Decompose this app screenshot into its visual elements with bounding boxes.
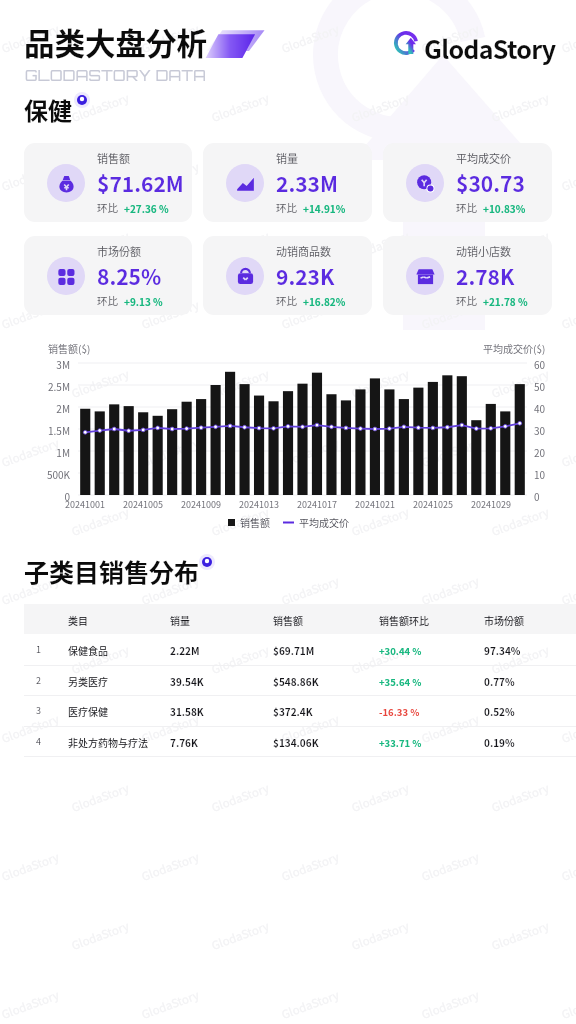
staticText: GlodaStory xyxy=(139,434,202,471)
staticText: 另类医疗 xyxy=(68,674,108,688)
staticText: 环比 xyxy=(456,200,477,215)
staticText: GlodaStory xyxy=(0,848,62,885)
staticText: GlodaStory xyxy=(0,572,62,609)
button[interactable]: 动销商品数 xyxy=(203,236,372,315)
staticText: 类目 xyxy=(68,613,88,627)
staticText: 20241009 xyxy=(171,498,231,511)
staticText: GlodaStory xyxy=(139,572,202,609)
staticText: 2M xyxy=(4,401,70,415)
staticText: 销售额 xyxy=(273,613,303,627)
staticText: 1.5M xyxy=(4,423,70,437)
staticText: GlodaStory xyxy=(419,296,482,333)
staticText: 10 xyxy=(534,467,546,481)
staticText: 30 xyxy=(534,423,546,437)
staticText: 动销小店数 xyxy=(456,243,511,259)
button[interactable]: 4 xyxy=(0,726,576,757)
staticText: GlodaStory xyxy=(419,572,482,609)
staticText: 动销商品数 xyxy=(276,243,331,259)
staticText: +21.78 % xyxy=(483,294,528,308)
staticText: $134.06K xyxy=(273,735,319,749)
button[interactable]: 销量 xyxy=(203,143,372,222)
button[interactable]: 市场份额 xyxy=(24,236,192,315)
staticText: GlodaStory xyxy=(489,779,552,816)
staticText: 保健食品 xyxy=(68,643,108,657)
staticText: 0.52% xyxy=(484,704,515,718)
staticText: GlodaStory xyxy=(489,641,552,678)
staticText: +10.83% xyxy=(483,201,526,215)
staticText: GlodaStory xyxy=(139,986,202,1023)
staticText: 1M xyxy=(4,445,70,459)
staticText: 环比 xyxy=(276,200,297,215)
staticText: 环比 xyxy=(97,293,118,308)
staticText: 平均成交价 xyxy=(456,150,511,166)
staticText: 2.33M xyxy=(276,168,338,198)
staticText: 0 xyxy=(4,489,70,503)
staticText: 500K xyxy=(4,467,70,481)
staticText: 销售额环比 xyxy=(379,613,429,627)
button[interactable]: 动销小店数 xyxy=(383,236,552,315)
button[interactable]: 平均成交价 xyxy=(383,143,552,222)
staticText: GlodaStory xyxy=(489,917,552,954)
staticText: 品类大盘分析 xyxy=(24,20,207,64)
staticText: 7.76K xyxy=(170,735,198,749)
button[interactable]: 2 xyxy=(0,665,576,696)
staticText: GlodaStory xyxy=(419,20,482,57)
staticText: 40 xyxy=(534,401,546,415)
staticText: GlodaStory xyxy=(139,848,202,885)
staticText: 市场份额 xyxy=(484,613,524,627)
staticText: 医疗保健 xyxy=(68,704,108,718)
staticText: GlodaStory xyxy=(559,710,576,747)
staticText: GlodaStory xyxy=(0,296,62,333)
staticText: GlodaStory xyxy=(209,641,272,678)
staticText: 非处方药物与疗法 xyxy=(68,735,148,749)
staticText: GlodaStory xyxy=(0,710,62,747)
staticText: 0.19% xyxy=(484,735,515,749)
staticText: GlodaStory xyxy=(209,917,272,954)
button[interactable]: 销售额 xyxy=(24,143,192,222)
staticText: GlodaStory xyxy=(424,30,556,66)
staticText: GlodaStory xyxy=(69,89,132,126)
staticText: GlodaStory xyxy=(0,986,62,1023)
staticText: 销量 xyxy=(276,150,298,166)
staticText: GlodaStory xyxy=(209,227,272,264)
staticText: 20241005 xyxy=(113,498,173,511)
staticText: +9.13 % xyxy=(124,294,163,308)
button[interactable]: 1 xyxy=(0,634,576,665)
staticText: 3M xyxy=(4,357,70,371)
button[interactable]: 3 xyxy=(0,695,576,726)
staticText: $30.73 xyxy=(456,168,525,198)
staticText: 97.34% xyxy=(484,643,521,657)
staticText: 销售额 xyxy=(97,150,130,166)
staticText: 2.5M xyxy=(4,379,70,393)
staticText: +33.71 % xyxy=(379,736,422,750)
staticText: 60 xyxy=(534,357,546,371)
staticText: GlodaStory xyxy=(349,641,412,678)
staticText: GlodaStory xyxy=(279,710,342,747)
staticText: 子类目销售分布 xyxy=(24,553,200,589)
staticText: GlodaStory xyxy=(279,848,342,885)
staticText: GlodaStory xyxy=(209,365,272,402)
staticText: 20241017 xyxy=(287,498,347,511)
staticText: 20241013 xyxy=(229,498,289,511)
staticText: 市场份额 xyxy=(97,243,141,259)
staticText: 20 xyxy=(534,445,546,459)
staticText: 平均成交价($) xyxy=(483,341,546,355)
staticText: GlodaStory xyxy=(139,20,202,57)
staticText: GlodaStory xyxy=(209,503,272,540)
staticText: 平均成交价 xyxy=(299,515,349,529)
staticText: $372.4K xyxy=(273,704,313,718)
staticText: GlodaStory xyxy=(0,20,62,57)
staticText: $71.62M xyxy=(97,168,184,198)
staticText: 环比 xyxy=(456,293,477,308)
staticText: +27.36 % xyxy=(124,201,169,215)
staticText: 4 xyxy=(36,735,41,748)
staticText: 20241029 xyxy=(461,498,521,511)
staticText: GlodaStory xyxy=(419,986,482,1023)
staticText: 20241001 xyxy=(55,498,115,511)
staticText: GlodaStory xyxy=(69,503,132,540)
staticText: GlodaStory xyxy=(489,89,552,126)
